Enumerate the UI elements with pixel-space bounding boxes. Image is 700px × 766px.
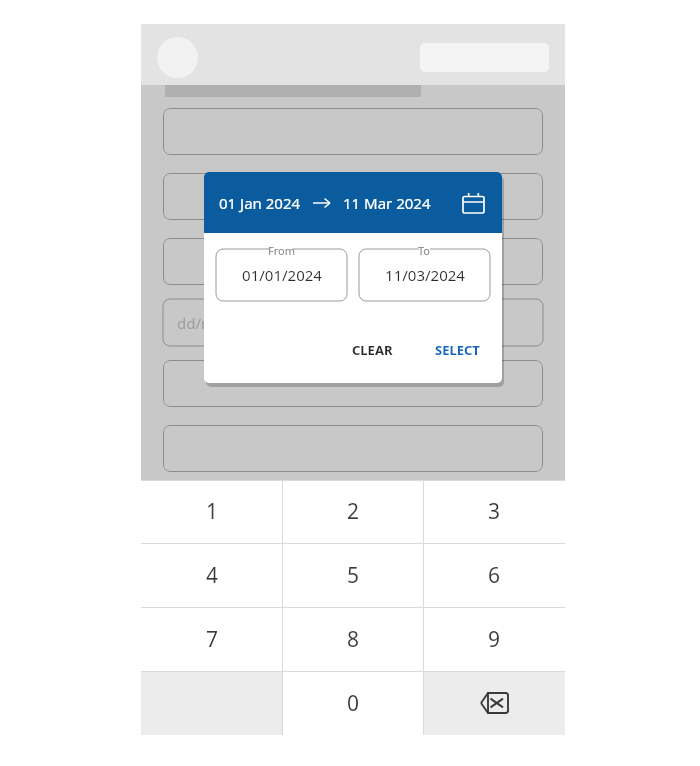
button[interactable]: 3 (424, 480, 565, 543)
staticText: From (268, 243, 295, 258)
staticText: 3 (488, 497, 501, 526)
button[interactable]: 9 (424, 607, 565, 671)
staticText: 01/01/2024 (242, 265, 322, 285)
button[interactable]: From (216, 249, 347, 301)
button[interactable]: 7 (141, 607, 283, 671)
staticText: 11 Mar 2024 (343, 193, 431, 213)
staticText: 11/03/2024 (385, 265, 465, 285)
staticText: 01 Jan 2024 (219, 193, 301, 213)
staticText: 6 (488, 561, 501, 590)
button[interactable] (163, 360, 543, 407)
staticText: 9 (488, 625, 501, 654)
button[interactable]: Backspace (424, 671, 565, 735)
button[interactable]: 6 (424, 543, 565, 607)
staticText: 5 (347, 561, 360, 590)
button[interactable]: 2 (283, 480, 424, 543)
button[interactable]: 5 (283, 543, 424, 607)
button[interactable]: 1 (141, 480, 283, 543)
button[interactable]: Profile (157, 37, 198, 78)
button[interactable]: SELECT (425, 335, 490, 365)
button[interactable] (163, 238, 543, 285)
staticText: 8 (347, 625, 360, 654)
staticText: To (418, 243, 431, 258)
staticText: 4 (206, 561, 219, 590)
staticText: dd/mm/yyyy (177, 313, 266, 333)
button[interactable]: 0 (283, 671, 424, 735)
button[interactable]: 8 (283, 607, 424, 671)
staticText: 1 (206, 497, 219, 526)
button[interactable]: 4 (141, 543, 283, 607)
button[interactable]: To (359, 249, 490, 301)
staticText: SELECT (435, 341, 480, 359)
staticText: CLEAR (352, 341, 393, 359)
button[interactable]: Open calendar picker (458, 188, 488, 218)
button[interactable] (163, 425, 543, 472)
button[interactable] (163, 173, 543, 220)
button[interactable] (163, 108, 543, 155)
staticText: 2 (347, 497, 360, 526)
button[interactable]: CLEAR (342, 335, 403, 365)
staticText: 0 (347, 689, 360, 718)
staticText: 7 (206, 625, 219, 654)
staticText: From (340, 293, 367, 308)
